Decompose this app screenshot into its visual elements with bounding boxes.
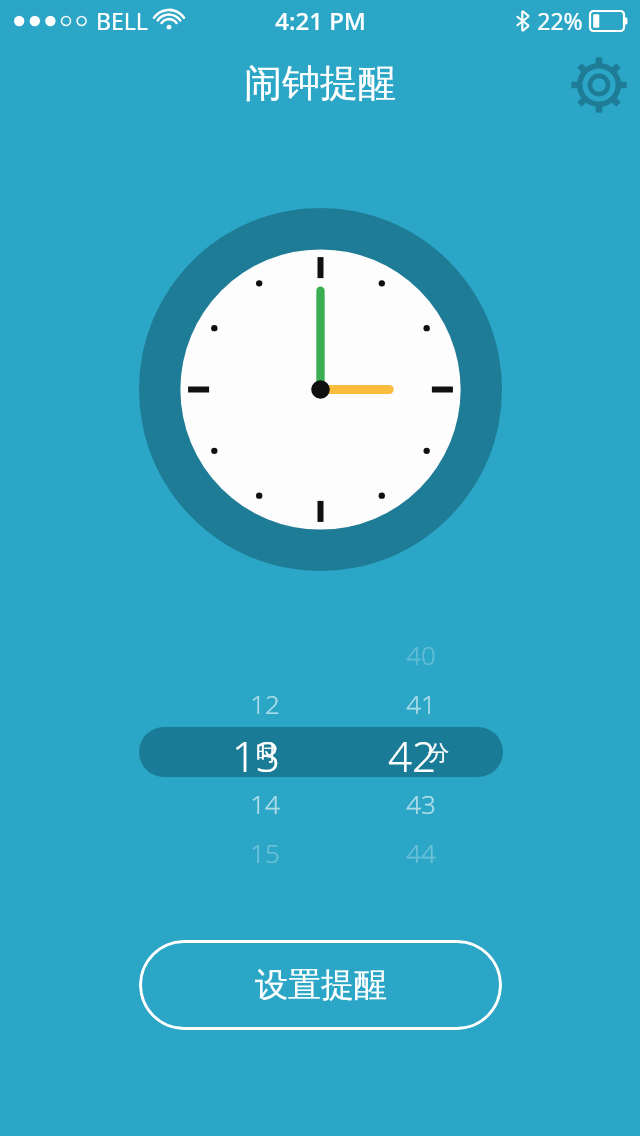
button[interactable] — [139, 727, 503, 777]
staticText: 闹钟提醒 — [244, 59, 396, 107]
staticText: BELL — [96, 5, 148, 36]
staticText: 15 — [250, 835, 280, 870]
staticText: 40 — [406, 637, 436, 672]
staticText: 42 — [388, 727, 436, 777]
staticText: 22% — [537, 5, 583, 36]
button[interactable]: Settings — [569, 55, 629, 115]
staticText: 分 — [428, 740, 449, 766]
staticText: 12 — [250, 686, 280, 721]
staticText: 设置提醒 — [255, 964, 387, 1006]
staticText: 44 — [406, 835, 436, 870]
staticText: 4:21 PM — [275, 4, 366, 37]
staticText: 时 — [256, 740, 277, 766]
staticText: 13 — [232, 727, 280, 777]
button[interactable]: 设置提醒 — [139, 940, 502, 1030]
staticText: 41 — [406, 686, 436, 721]
staticText: 14 — [250, 786, 280, 821]
staticText: 43 — [406, 786, 436, 821]
